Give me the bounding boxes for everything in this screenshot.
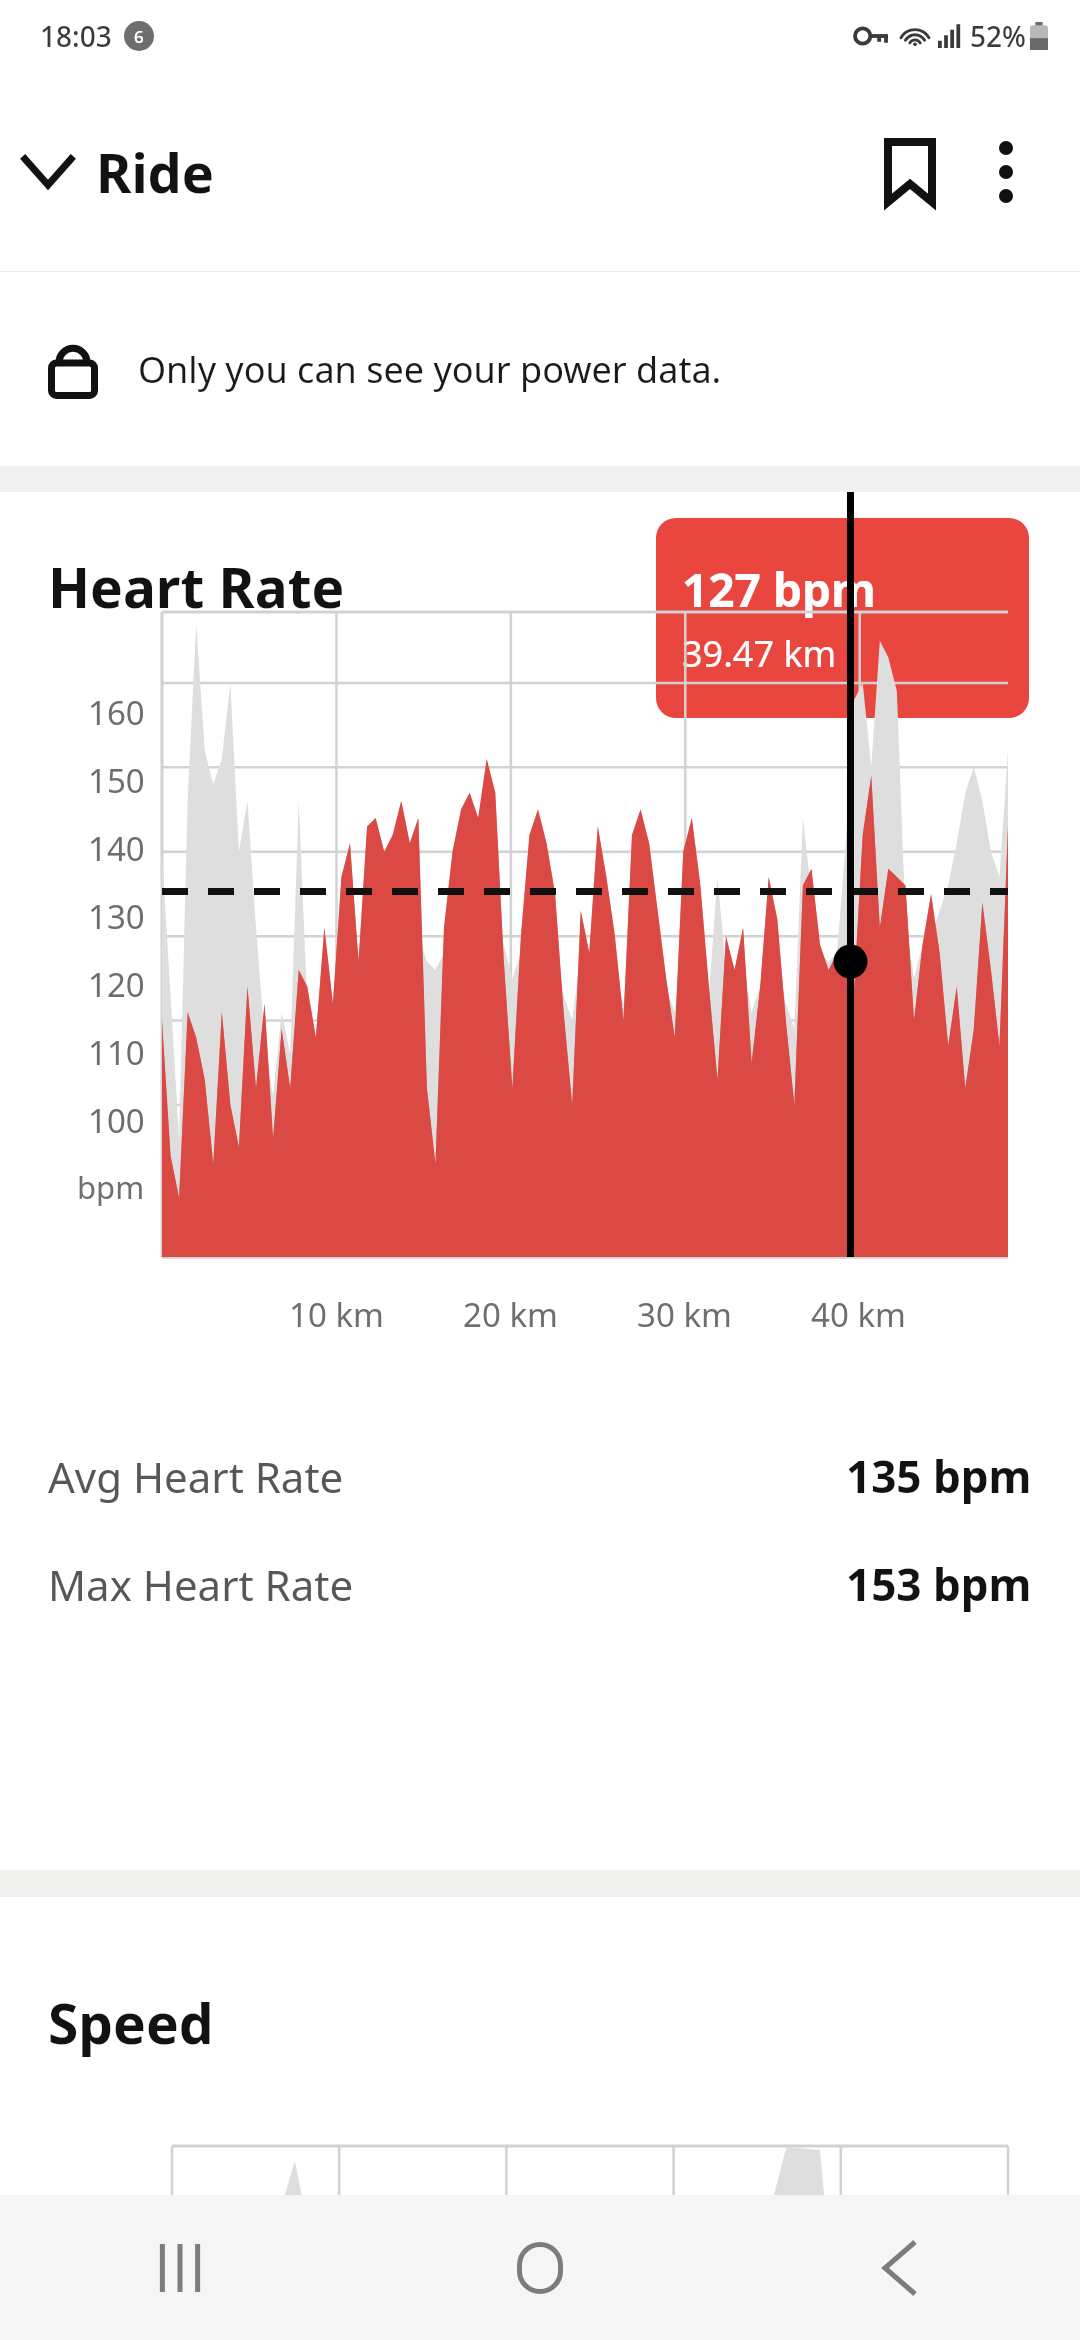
- staticText: Avg Heart Rate: [48, 1448, 344, 1505]
- staticText: Only you can see your power data.: [138, 345, 722, 394]
- staticText: 150: [88, 758, 145, 803]
- button[interactable]: More options: [958, 124, 1054, 220]
- staticText: 10 km: [289, 1292, 384, 1337]
- staticText: 20 km: [463, 1292, 558, 1337]
- staticText: 6: [134, 25, 144, 48]
- staticText: 160: [88, 690, 145, 735]
- staticText: 110: [88, 1030, 145, 1075]
- staticText: Speed: [48, 1985, 214, 2060]
- staticText: 135 bpm: [846, 1446, 1032, 1506]
- staticText: 52%: [970, 17, 1026, 55]
- staticText: 40 km: [811, 1292, 906, 1337]
- staticText: 140: [88, 826, 145, 871]
- staticText: Heart Rate: [48, 549, 345, 624]
- button[interactable]: Max Heart Rate: [0, 1530, 1080, 1638]
- button[interactable]: Save: [862, 124, 958, 220]
- staticText: Max Heart Rate: [48, 1556, 354, 1613]
- button[interactable]: 127 bpm: [656, 518, 1029, 718]
- button[interactable]: Recent apps: [0, 2195, 360, 2340]
- staticText: 18:03: [40, 17, 112, 55]
- staticText: 100: [88, 1098, 145, 1143]
- button[interactable]: Back: [720, 2195, 1080, 2340]
- staticText: 120: [88, 962, 145, 1007]
- staticText: Ride: [96, 135, 214, 209]
- button[interactable]: Avg Heart Rate: [0, 1422, 1080, 1530]
- button[interactable]: Collapse: [0, 124, 96, 220]
- staticText: 153 bpm: [846, 1554, 1032, 1614]
- button[interactable]: Home: [360, 2195, 720, 2340]
- staticText: 130: [88, 894, 145, 939]
- staticText: 39.47 km: [682, 629, 837, 678]
- button[interactable]: Only you can see your power data.: [0, 272, 1080, 466]
- staticText: bpm: [77, 1166, 145, 1208]
- staticText: 30 km: [637, 1292, 732, 1337]
- staticText: 127 bpm: [682, 558, 876, 621]
